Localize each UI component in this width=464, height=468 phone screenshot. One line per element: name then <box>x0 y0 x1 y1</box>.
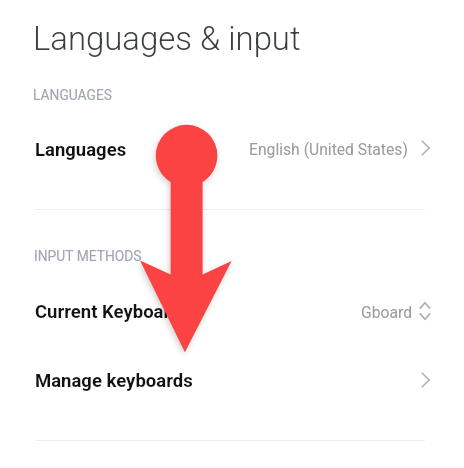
staticText: English (United States) <box>249 140 408 158</box>
staticText: Languages & input <box>33 19 301 58</box>
other: Change keyboard <box>419 302 431 320</box>
other: Open <box>421 372 430 388</box>
staticText: Gboard <box>361 303 412 321</box>
button[interactable]: Manage keyboards <box>0 354 464 408</box>
button[interactable]: Current Keyboard <box>0 285 464 339</box>
staticText: Languages <box>35 139 127 161</box>
staticText: Current Keyboard <box>35 301 181 323</box>
button[interactable]: Languages <box>0 123 464 177</box>
staticText: LANGUAGES <box>33 87 112 103</box>
staticText: Manage keyboards <box>35 370 193 392</box>
staticText: INPUT METHODS <box>34 248 142 264</box>
other: Open <box>421 140 430 156</box>
